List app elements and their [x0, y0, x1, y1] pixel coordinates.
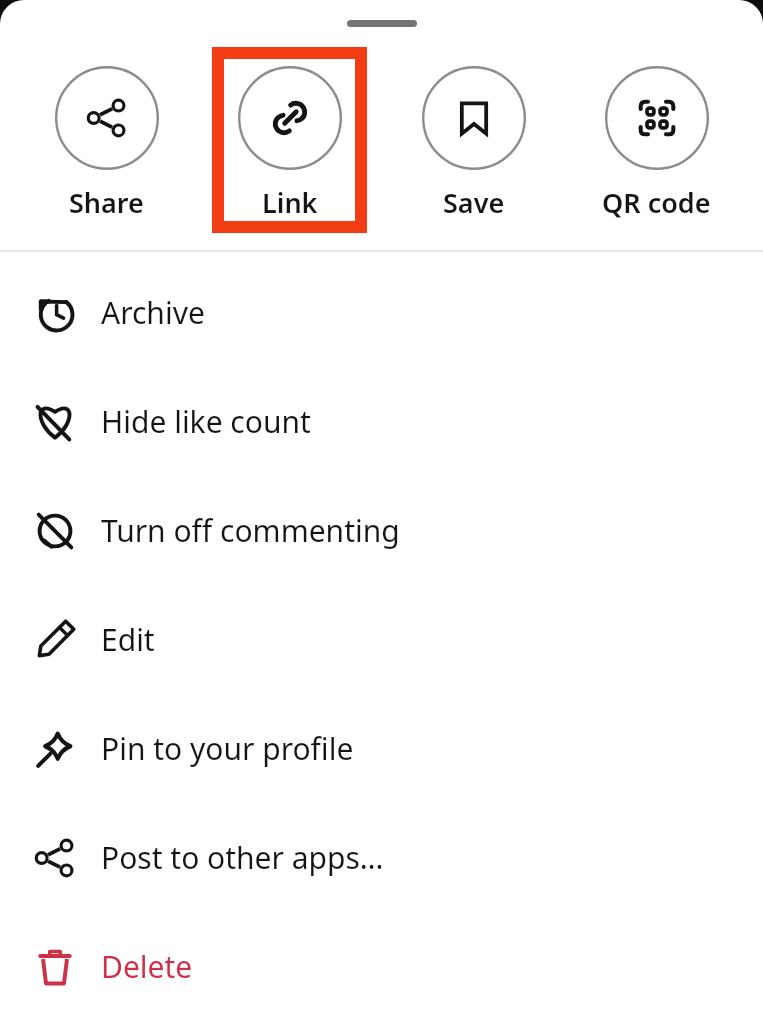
button[interactable]: Archive — [0, 258, 763, 367]
button[interactable]: Turn off commenting — [0, 476, 763, 585]
staticText: Archive — [101, 292, 205, 333]
staticText: Post to other apps… — [101, 837, 384, 878]
button[interactable]: Post to other apps… — [0, 803, 763, 912]
staticText: QR code — [602, 184, 711, 221]
staticText: Pin to your profile — [101, 728, 354, 769]
button[interactable]: Link — [212, 40, 367, 221]
staticText: Edit — [101, 619, 155, 660]
button[interactable]: Edit — [0, 585, 763, 694]
staticText: Link — [262, 184, 318, 221]
button[interactable]: Pin to your profile — [0, 694, 763, 803]
staticText: Save — [443, 184, 505, 221]
staticText: Delete — [101, 946, 193, 987]
staticText: Turn off commenting — [101, 510, 400, 551]
staticText: Share — [69, 184, 144, 221]
button[interactable]: Delete — [0, 912, 763, 1021]
button[interactable]: Share — [29, 40, 184, 221]
button[interactable]: Save — [396, 40, 551, 221]
staticText: Hide like count — [101, 401, 311, 442]
button[interactable]: QR code — [579, 40, 734, 221]
button[interactable]: Hide like count — [0, 367, 763, 476]
